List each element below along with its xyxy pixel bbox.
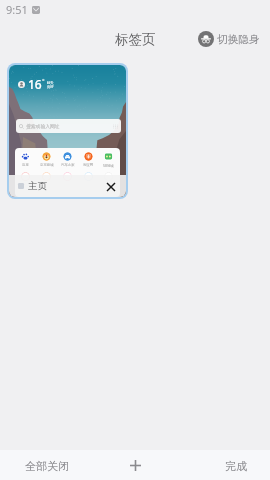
staticText: 京东商城 bbox=[40, 163, 54, 167]
button[interactable]: 汽车之家 bbox=[57, 152, 78, 167]
button[interactable]: New tab bbox=[128, 458, 142, 472]
staticText: 全部关闭 bbox=[25, 459, 69, 473]
button[interactable]: 58同城 bbox=[99, 152, 117, 168]
staticText: 标签页 bbox=[115, 31, 156, 48]
staticText: 晴天 bbox=[47, 81, 54, 85]
staticText: 汽车之家 bbox=[61, 163, 75, 167]
button[interactable] bbox=[78, 172, 99, 181]
button[interactable]: 京东商城 bbox=[36, 152, 57, 167]
button[interactable] bbox=[15, 172, 36, 181]
staticText: 9:51 bbox=[6, 2, 28, 17]
staticText: 16 bbox=[28, 76, 42, 92]
button[interactable] bbox=[36, 172, 57, 181]
button[interactable]: Close tab bbox=[104, 180, 117, 193]
button[interactable]: 完成 bbox=[225, 459, 247, 473]
button[interactable] bbox=[57, 172, 78, 181]
staticText: 淘宝网 bbox=[83, 163, 94, 167]
button[interactable]: 淘宝网 bbox=[78, 152, 99, 167]
staticText: 百度 bbox=[22, 163, 29, 167]
staticText: 主页 bbox=[28, 180, 47, 192]
staticText: 良好 bbox=[47, 85, 54, 89]
staticText: 切换隐身 bbox=[217, 33, 260, 46]
button[interactable]: 百度 bbox=[15, 152, 36, 167]
staticText: 完成 bbox=[225, 459, 247, 473]
button[interactable]: 切换隐身 bbox=[196, 29, 262, 49]
staticText: 搜索或输入网址 bbox=[26, 123, 60, 129]
button[interactable]: 搜索或输入网址 bbox=[16, 119, 121, 133]
button[interactable]: 16 bbox=[9, 65, 126, 197]
staticText: ° bbox=[42, 77, 45, 85]
button[interactable] bbox=[99, 172, 117, 181]
button[interactable]: 全部关闭 bbox=[25, 459, 69, 473]
staticText: 58同城 bbox=[103, 163, 114, 168]
